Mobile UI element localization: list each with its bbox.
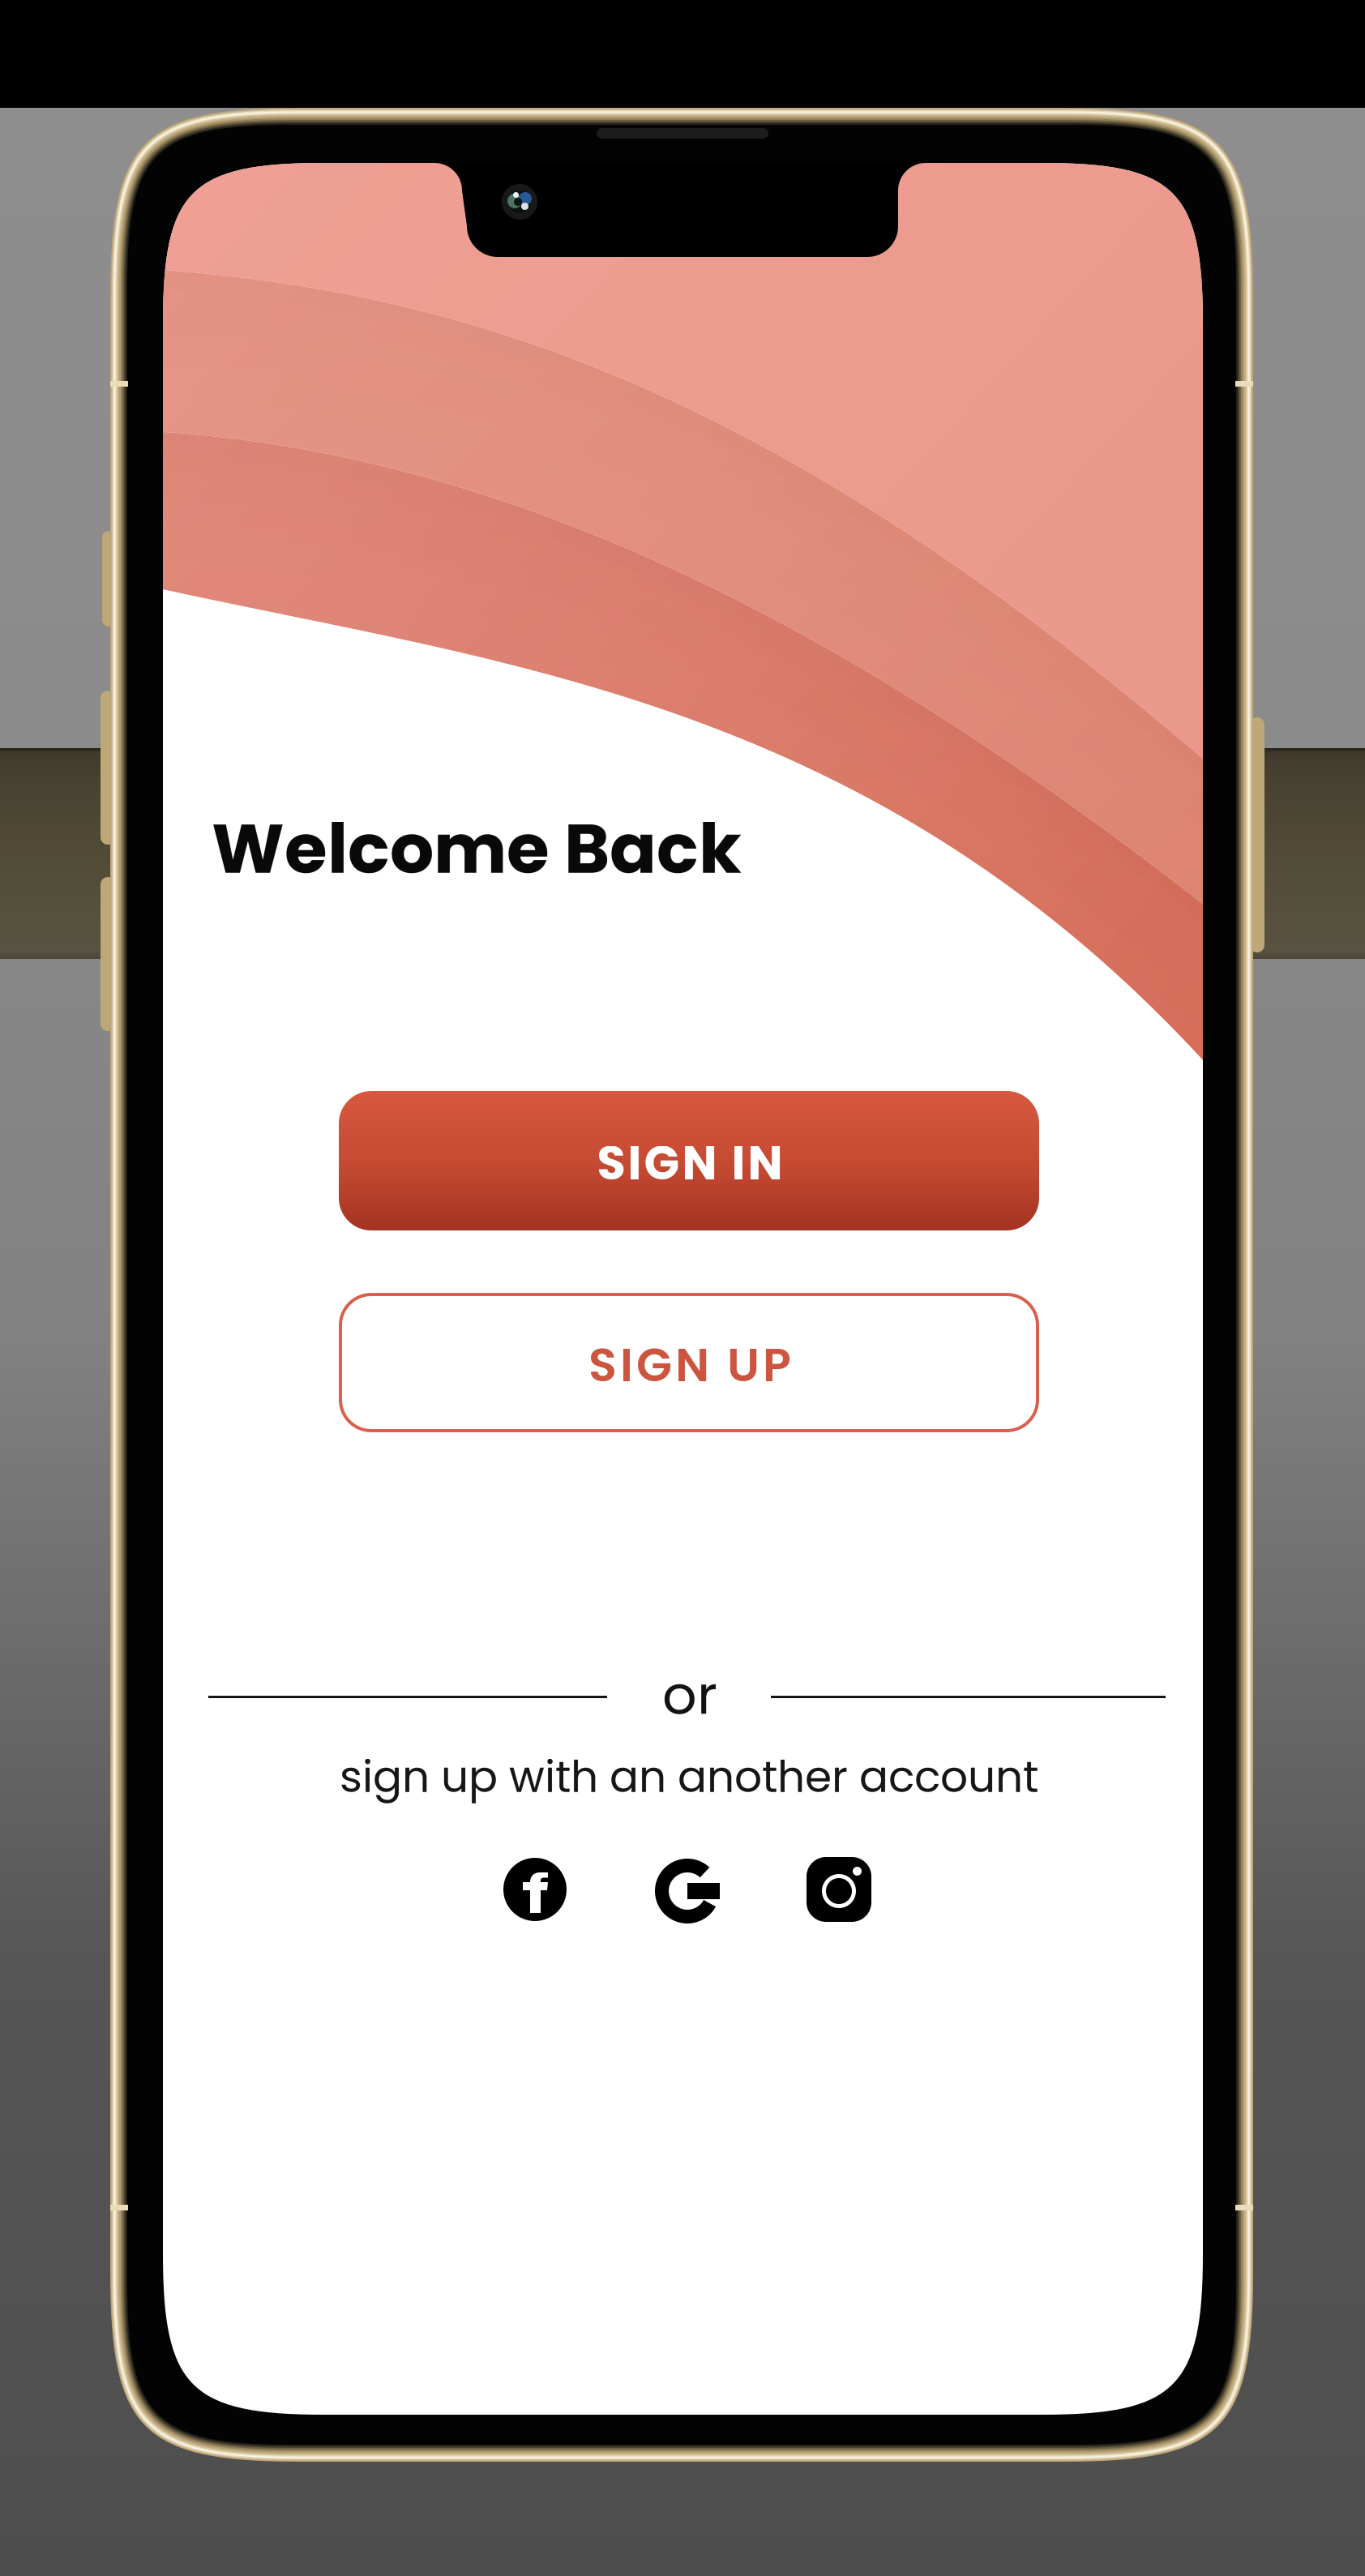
button[interactable]: SIGN UP — [0, 0, 1365, 2576]
button[interactable]: Sign in with Google — [0, 0, 1365, 2576]
staticText: Welcome Back — [212, 800, 742, 897]
staticText: SIGN UP — [588, 1333, 791, 1398]
button[interactable]: Sign in with Facebook — [0, 0, 1365, 2576]
staticText: sign up with an another account — [340, 1747, 1038, 1807]
staticText: SIGN IN — [597, 1131, 783, 1196]
button[interactable]: Sign in with Instagram — [0, 0, 1365, 2576]
button[interactable]: SIGN IN — [0, 0, 1365, 2576]
staticText: or — [662, 1657, 717, 1733]
